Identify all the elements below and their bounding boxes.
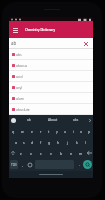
staticText: ?123 (11, 163, 17, 167)
button[interactable]: u (61, 126, 69, 136)
button[interactable]: y (53, 126, 61, 136)
staticText: p (88, 129, 91, 134)
staticText: n (70, 151, 73, 156)
button[interactable]: Emoji (26, 160, 34, 169)
staticText: abacus (16, 63, 28, 68)
staticText: g (48, 140, 51, 145)
button[interactable]: ab (9, 38, 93, 49)
staticText: abs (73, 118, 79, 122)
button[interactable]: ?123 (10, 160, 18, 169)
button[interactable]: n (66, 148, 76, 158)
staticText: h (57, 140, 60, 145)
button[interactable]: b (56, 148, 66, 158)
staticText: u (64, 129, 67, 134)
staticText: alum (16, 96, 25, 101)
staticText: f (40, 140, 42, 145)
staticText: z (20, 151, 22, 156)
staticText: i (73, 129, 74, 134)
button[interactable]: s (20, 137, 28, 147)
staticText: . (79, 162, 80, 167)
staticText: b (60, 151, 63, 156)
button[interactable]: Shift (9, 148, 16, 158)
button[interactable]: h (54, 137, 63, 147)
button[interactable]: d (28, 137, 36, 147)
staticText: d (31, 140, 34, 145)
staticText: , (22, 162, 23, 167)
button[interactable]: Clear (80, 38, 91, 49)
staticText: y (56, 129, 58, 134)
staticText: r (40, 129, 42, 134)
button[interactable]: Google (9, 115, 17, 125)
staticText: l (85, 140, 86, 145)
button[interactable]: abs (64, 115, 87, 125)
button[interactable]: acyl (9, 82, 93, 93)
button[interactable]: Search (83, 160, 92, 169)
button[interactable]: ab (17, 115, 41, 125)
staticText: j (67, 140, 68, 145)
staticText: x (30, 151, 32, 156)
staticText: m (79, 151, 83, 156)
staticText: s (23, 140, 25, 145)
button[interactable]: Open navigation drawer (9, 21, 22, 38)
staticText: abs (16, 52, 22, 57)
staticText: t (48, 129, 50, 134)
button[interactable]: Period (75, 160, 83, 169)
staticText: ab (27, 118, 31, 122)
button[interactable]: p (85, 126, 93, 136)
staticText: ab (11, 40, 17, 46)
button[interactable]: o (77, 126, 85, 136)
button[interactable]: c (36, 148, 46, 158)
staticText: v (50, 151, 52, 156)
staticText: q (12, 129, 15, 134)
button[interactable]: g (45, 137, 54, 147)
staticText: Chemistry Dictionary (25, 28, 56, 32)
button[interactable]: f (36, 137, 45, 147)
button[interactable]: w (18, 126, 27, 136)
staticText: acyl (16, 85, 23, 90)
staticText: absolute (16, 107, 30, 112)
button[interactable]: q (9, 126, 18, 136)
button[interactable]: abs (9, 49, 93, 60)
button[interactable]: x (26, 148, 36, 158)
button[interactable]: t (45, 126, 53, 136)
staticText: c (40, 151, 42, 156)
button[interactable]: k (72, 137, 81, 147)
staticText: k (76, 140, 78, 145)
button[interactable]: a (12, 137, 20, 147)
staticText: acid (16, 74, 23, 79)
staticText: a (15, 140, 17, 145)
button[interactable]: e (27, 126, 36, 136)
staticText: e (31, 129, 33, 134)
button[interactable]: z (16, 148, 26, 158)
button[interactable]: i (69, 126, 77, 136)
staticText: o (80, 129, 83, 134)
button[interactable]: About (41, 115, 64, 125)
staticText: w (21, 129, 24, 134)
button[interactable]: v (46, 148, 56, 158)
button[interactable]: Comma (18, 160, 26, 169)
button[interactable]: r (36, 126, 45, 136)
button[interactable]: alum (9, 93, 93, 104)
button[interactable]: More suggestions (87, 115, 93, 125)
button[interactable]: j (63, 137, 72, 147)
button[interactable]: l (81, 137, 90, 147)
button[interactable]: m (76, 148, 86, 158)
button[interactable]: acid (9, 71, 93, 82)
button[interactable]: absolute (9, 104, 93, 115)
staticText: About (48, 118, 58, 122)
button[interactable]: Backspace (86, 148, 93, 158)
button[interactable]: abacus (9, 60, 93, 71)
